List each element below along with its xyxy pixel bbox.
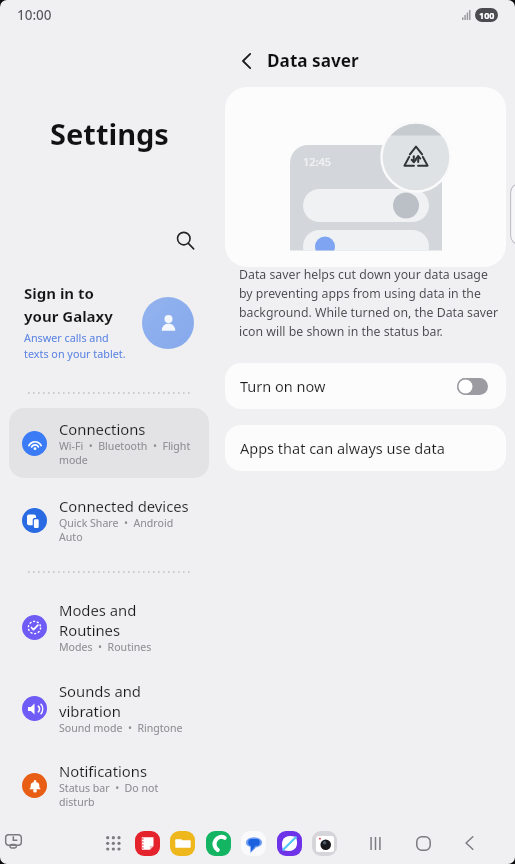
- staticText: Quick Share • Android Auto: [59, 516, 174, 544]
- button[interactable]: Sign in to your Galaxy: [0, 277, 222, 368]
- button[interactable]: Back: [458, 831, 482, 855]
- staticText: Turn on now: [240, 376, 457, 396]
- staticText: Data saver: [267, 49, 359, 72]
- button[interactable]: Connections: [9, 408, 209, 478]
- staticText: Connected devices: [59, 496, 189, 516]
- button[interactable]: Modes and Routines: [9, 589, 209, 665]
- button[interactable]: All apps: [99, 829, 125, 855]
- staticText: Answer calls and texts on your tablet.: [24, 330, 126, 362]
- staticText: Wi-Fi • Bluetooth • Flight mode: [59, 439, 191, 467]
- button[interactable]: My Files: [170, 831, 195, 856]
- button[interactable]: Connected devices: [9, 485, 209, 555]
- button[interactable]: Camera: [312, 831, 337, 856]
- button[interactable]: Recents: [363, 831, 387, 855]
- button[interactable]: DeX mode: [0, 828, 26, 854]
- button[interactable]: Samsung Notes: [135, 831, 160, 856]
- staticText: Data saver helps cut down your data usag…: [239, 266, 501, 340]
- button[interactable]: Notifications: [9, 750, 209, 820]
- staticText: 100: [479, 9, 495, 21]
- staticText: Sounds and vibration: [59, 681, 141, 721]
- staticText: Status bar • Do not disturb: [59, 781, 159, 809]
- staticText: Apps that can always use data: [240, 438, 445, 458]
- button[interactable]: Turn on now: [225, 363, 506, 409]
- staticText: Notifications: [59, 761, 148, 781]
- button[interactable]: Messages: [241, 831, 266, 856]
- staticText: Modes and Routines: [59, 600, 137, 640]
- staticText: 12:45: [303, 154, 332, 169]
- button[interactable]: Back: [229, 43, 264, 78]
- button[interactable]: Search: [169, 224, 201, 256]
- button[interactable]: Internet: [277, 831, 302, 856]
- button[interactable]: Apps that can always use data: [225, 425, 506, 471]
- staticText: Modes • Routines: [59, 640, 152, 654]
- staticText: Settings: [50, 114, 169, 153]
- button[interactable]: Phone: [206, 831, 231, 856]
- staticText: Sign in to your Galaxy: [24, 283, 113, 326]
- staticText: Sound mode • Ringtone: [59, 721, 183, 735]
- button[interactable]: Sounds and vibration: [9, 670, 209, 746]
- staticText: Connections: [59, 419, 146, 439]
- button[interactable]: Home: [411, 831, 435, 855]
- staticText: 10:00: [17, 6, 52, 24]
